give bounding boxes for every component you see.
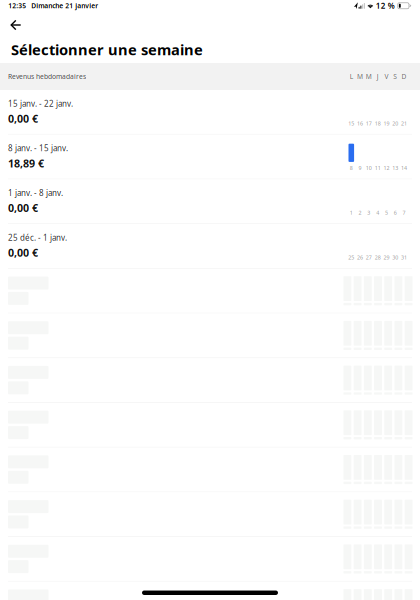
staticText: 9: [359, 164, 362, 172]
staticText: 4: [376, 209, 379, 216]
staticText: L: [350, 72, 353, 81]
button[interactable]: 25 déc. - 1 janv.: [0, 224, 420, 269]
staticText: 12: [383, 164, 389, 172]
staticText: 0,00 €: [8, 246, 38, 260]
staticText: 15: [348, 120, 354, 127]
staticText: 21: [401, 120, 407, 127]
staticText: 8: [350, 164, 353, 172]
staticText: 1: [350, 209, 353, 216]
staticText: 3: [367, 209, 370, 216]
staticText: Dimanche 21 janvier: [31, 1, 98, 10]
staticText: 16: [357, 120, 363, 127]
staticText: V: [384, 72, 388, 81]
staticText: Sélectionner une semaine: [11, 40, 203, 59]
staticText: Revenus hebdomadaires: [8, 72, 86, 81]
staticText: 2: [359, 209, 362, 216]
staticText: 18,89 €: [8, 156, 44, 170]
staticText: 19: [383, 120, 389, 127]
staticText: 25 déc. - 1 janv.: [8, 232, 67, 243]
staticText: 17: [366, 120, 372, 127]
staticText: 1 janv. - 8 janv.: [8, 188, 63, 198]
staticText: M: [357, 72, 363, 81]
button[interactable]: 1 janv. - 8 janv.: [0, 179, 420, 224]
staticText: 29: [383, 254, 389, 261]
staticText: 8 janv. - 15 janv.: [8, 143, 68, 154]
staticText: 31: [401, 254, 407, 261]
staticText: D: [401, 72, 406, 81]
button[interactable]: 15 janv. - 22 janv.: [0, 90, 420, 135]
staticText: 26: [357, 254, 363, 261]
staticText: 12:35: [8, 1, 26, 10]
staticText: 11: [375, 164, 381, 172]
staticText: 28: [375, 254, 381, 261]
staticText: S: [393, 72, 397, 81]
staticText: 30: [392, 254, 398, 261]
staticText: M: [366, 72, 372, 81]
button[interactable]: Back: [0, 14, 420, 36]
staticText: 27: [366, 254, 372, 261]
staticText: 12 %: [376, 0, 395, 11]
staticText: 0,00 €: [8, 201, 38, 215]
staticText: 10: [366, 164, 372, 172]
staticText: 25: [348, 254, 354, 261]
staticText: 0,00 €: [8, 111, 38, 126]
staticText: 6: [394, 209, 397, 216]
staticText: 14: [401, 164, 407, 172]
staticText: 15 janv. - 22 janv.: [8, 98, 73, 109]
staticText: 5: [385, 209, 388, 216]
staticText: 13: [392, 164, 398, 172]
staticText: 18: [375, 120, 381, 127]
staticText: J: [377, 72, 379, 81]
staticText: 7: [402, 209, 405, 216]
staticText: 20: [392, 120, 398, 127]
button[interactable]: 8 janv. - 15 janv.: [0, 135, 420, 179]
